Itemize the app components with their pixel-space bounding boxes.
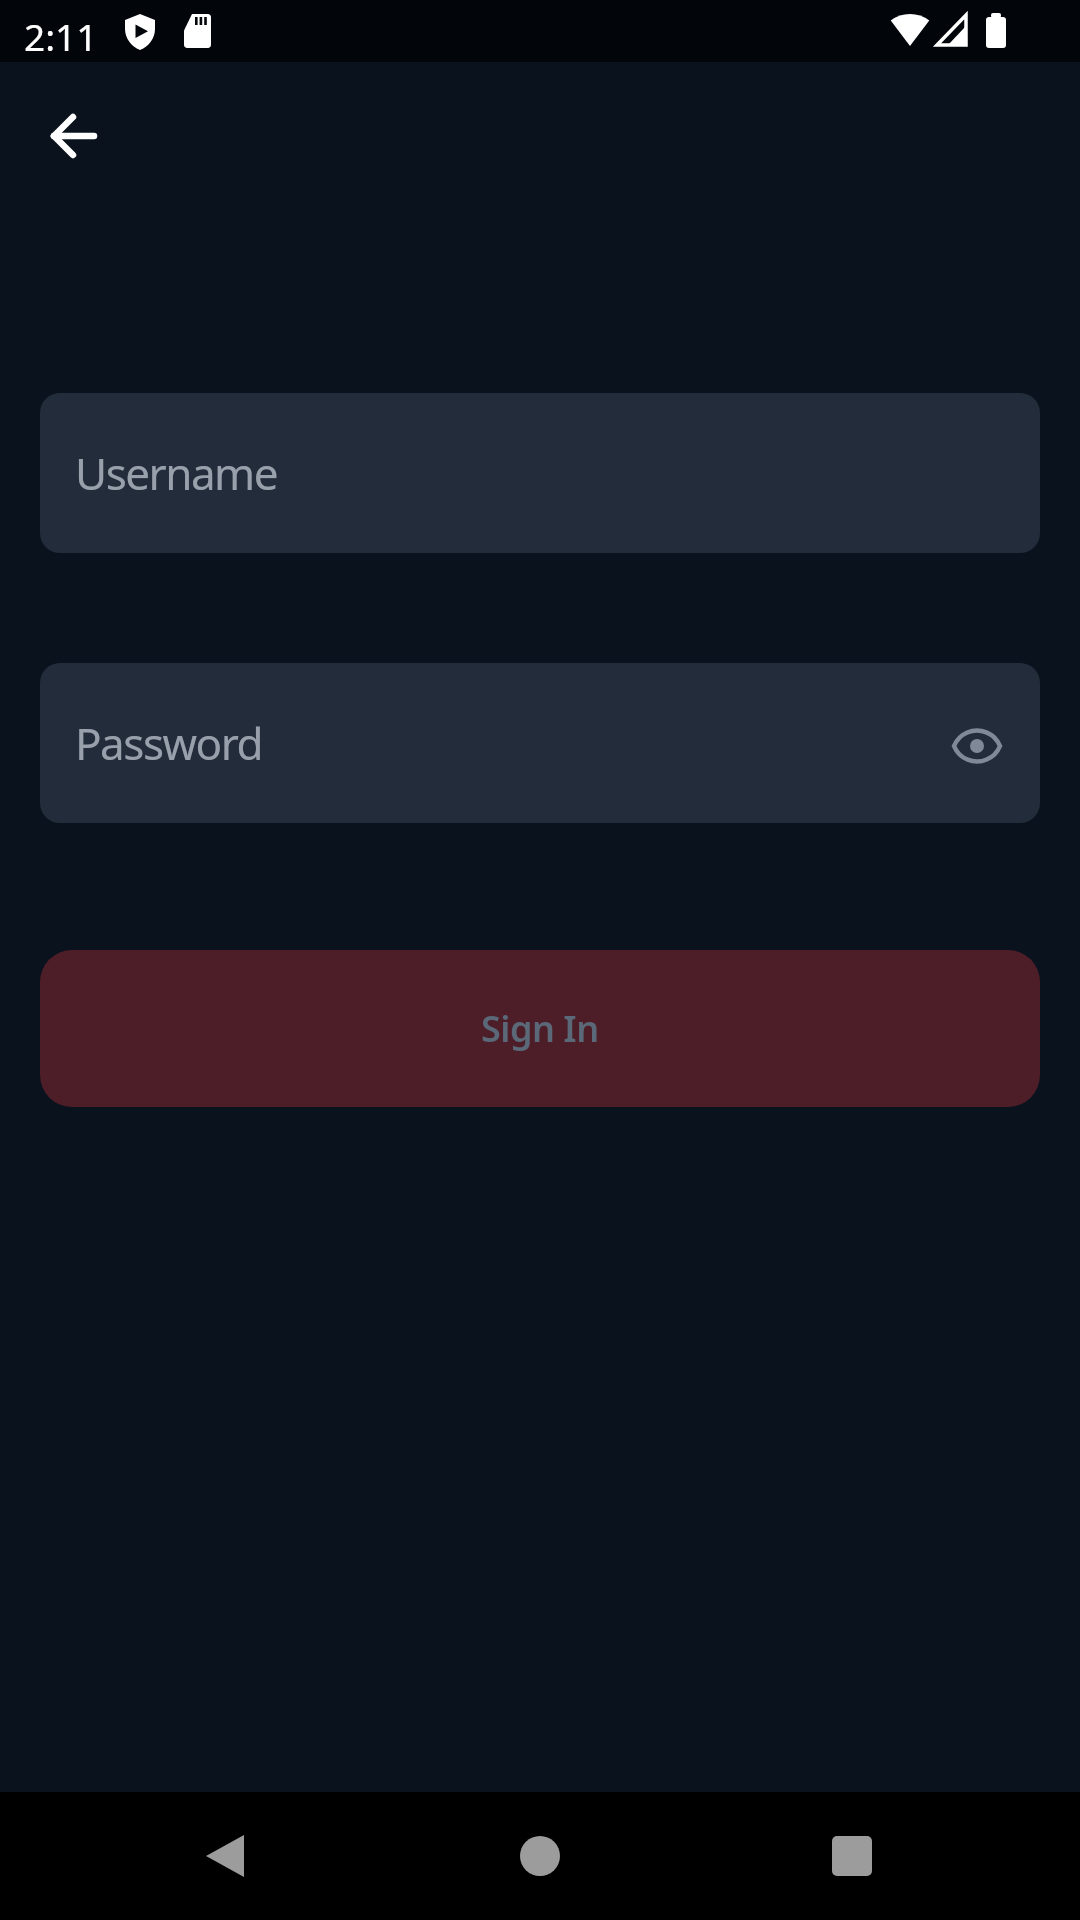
button[interactable] [953, 722, 1001, 770]
button[interactable] [816, 1820, 888, 1892]
staticText: Sign In [481, 1004, 599, 1053]
button[interactable]: Username [40, 393, 1040, 553]
button[interactable] [504, 1820, 576, 1892]
staticText: Password [75, 713, 263, 773]
staticText: 2:11 [24, 11, 98, 61]
button[interactable] [48, 110, 100, 162]
button[interactable]: Password [40, 663, 1040, 823]
button[interactable]: Sign In [40, 950, 1040, 1107]
staticText: Username [75, 443, 278, 503]
button[interactable] [189, 1820, 261, 1892]
